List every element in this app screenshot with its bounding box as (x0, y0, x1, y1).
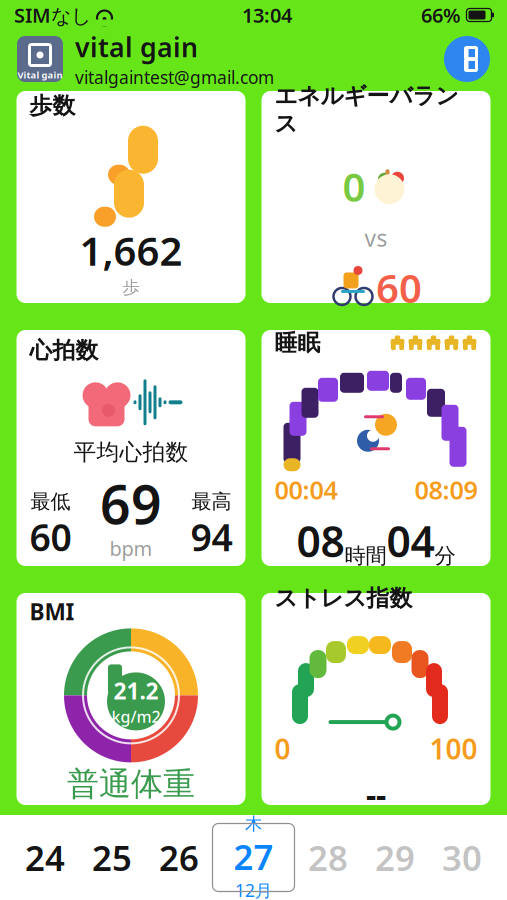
staticText: 00:04 (274, 473, 337, 506)
staticText: 04 (386, 512, 434, 569)
staticText: 時間 (344, 543, 386, 569)
staticText: 24 (25, 834, 65, 880)
staticText: 60 (376, 261, 422, 314)
staticText: 28 (308, 834, 348, 880)
staticText: BMI (29, 596, 74, 626)
staticText: 0 (274, 730, 290, 767)
button[interactable]: 心拍数 (16, 330, 245, 566)
staticText: 最低 (30, 489, 70, 514)
staticText: vital gain (75, 29, 198, 65)
staticText: 普通体重 (67, 764, 195, 804)
staticText: 歩数 (29, 92, 75, 120)
button[interactable]: 30 (428, 823, 495, 891)
staticText: 94 (190, 512, 232, 562)
staticText: vs (364, 223, 387, 253)
button[interactable]: 28 (294, 823, 361, 891)
staticText: 08:09 (414, 473, 477, 506)
staticText: 心拍数 (29, 336, 98, 364)
staticText: 29 (375, 834, 415, 880)
staticText: 26 (159, 834, 199, 880)
staticText: SIMなし (14, 2, 91, 28)
button[interactable]: 歩数 (16, 91, 245, 303)
staticText: kg/m2 (111, 706, 160, 727)
staticText: 歩 (122, 277, 139, 298)
button[interactable]: 睡眠 (261, 330, 490, 566)
button[interactable]: Bluetooth (444, 36, 490, 82)
button[interactable]: 24 (11, 823, 78, 891)
staticText: 69 (100, 468, 162, 539)
staticText: 100 (429, 730, 477, 767)
staticText: ストレス指数 (274, 584, 412, 612)
button[interactable]: 木 (212, 823, 294, 891)
staticText: 21.2 (113, 676, 158, 706)
staticText: bpm (109, 535, 152, 562)
staticText: 最高 (191, 489, 231, 514)
staticText: エネルギーバランス (274, 82, 458, 138)
staticText: 13:04 (242, 2, 292, 28)
button[interactable]: エネルギーバランス (261, 91, 490, 303)
staticText: 12月 (235, 879, 272, 900)
staticText: 木 (245, 813, 262, 835)
staticText: -- (366, 773, 386, 816)
button[interactable]: ストレス指数 (261, 593, 490, 805)
staticText: 平均心拍数 (73, 438, 188, 466)
staticText: 66% (421, 2, 461, 28)
button[interactable]: 25 (78, 823, 145, 891)
button[interactable]: 29 (361, 823, 428, 891)
staticText: 60 (29, 512, 71, 562)
staticText: 1,662 (79, 224, 182, 277)
staticText: 30 (442, 834, 482, 880)
staticText: Vital gain (17, 69, 62, 81)
button[interactable]: BMI (16, 593, 245, 805)
staticText: 08 (296, 512, 344, 569)
staticText: vitalgaintest@gmail.com (75, 66, 274, 89)
staticText: 分 (434, 543, 455, 569)
staticText: 27 (233, 834, 273, 880)
staticText: 25 (92, 834, 132, 880)
staticText: 睡眠 (274, 329, 320, 357)
staticText: 0 (342, 160, 365, 213)
button[interactable]: 26 (145, 823, 212, 891)
